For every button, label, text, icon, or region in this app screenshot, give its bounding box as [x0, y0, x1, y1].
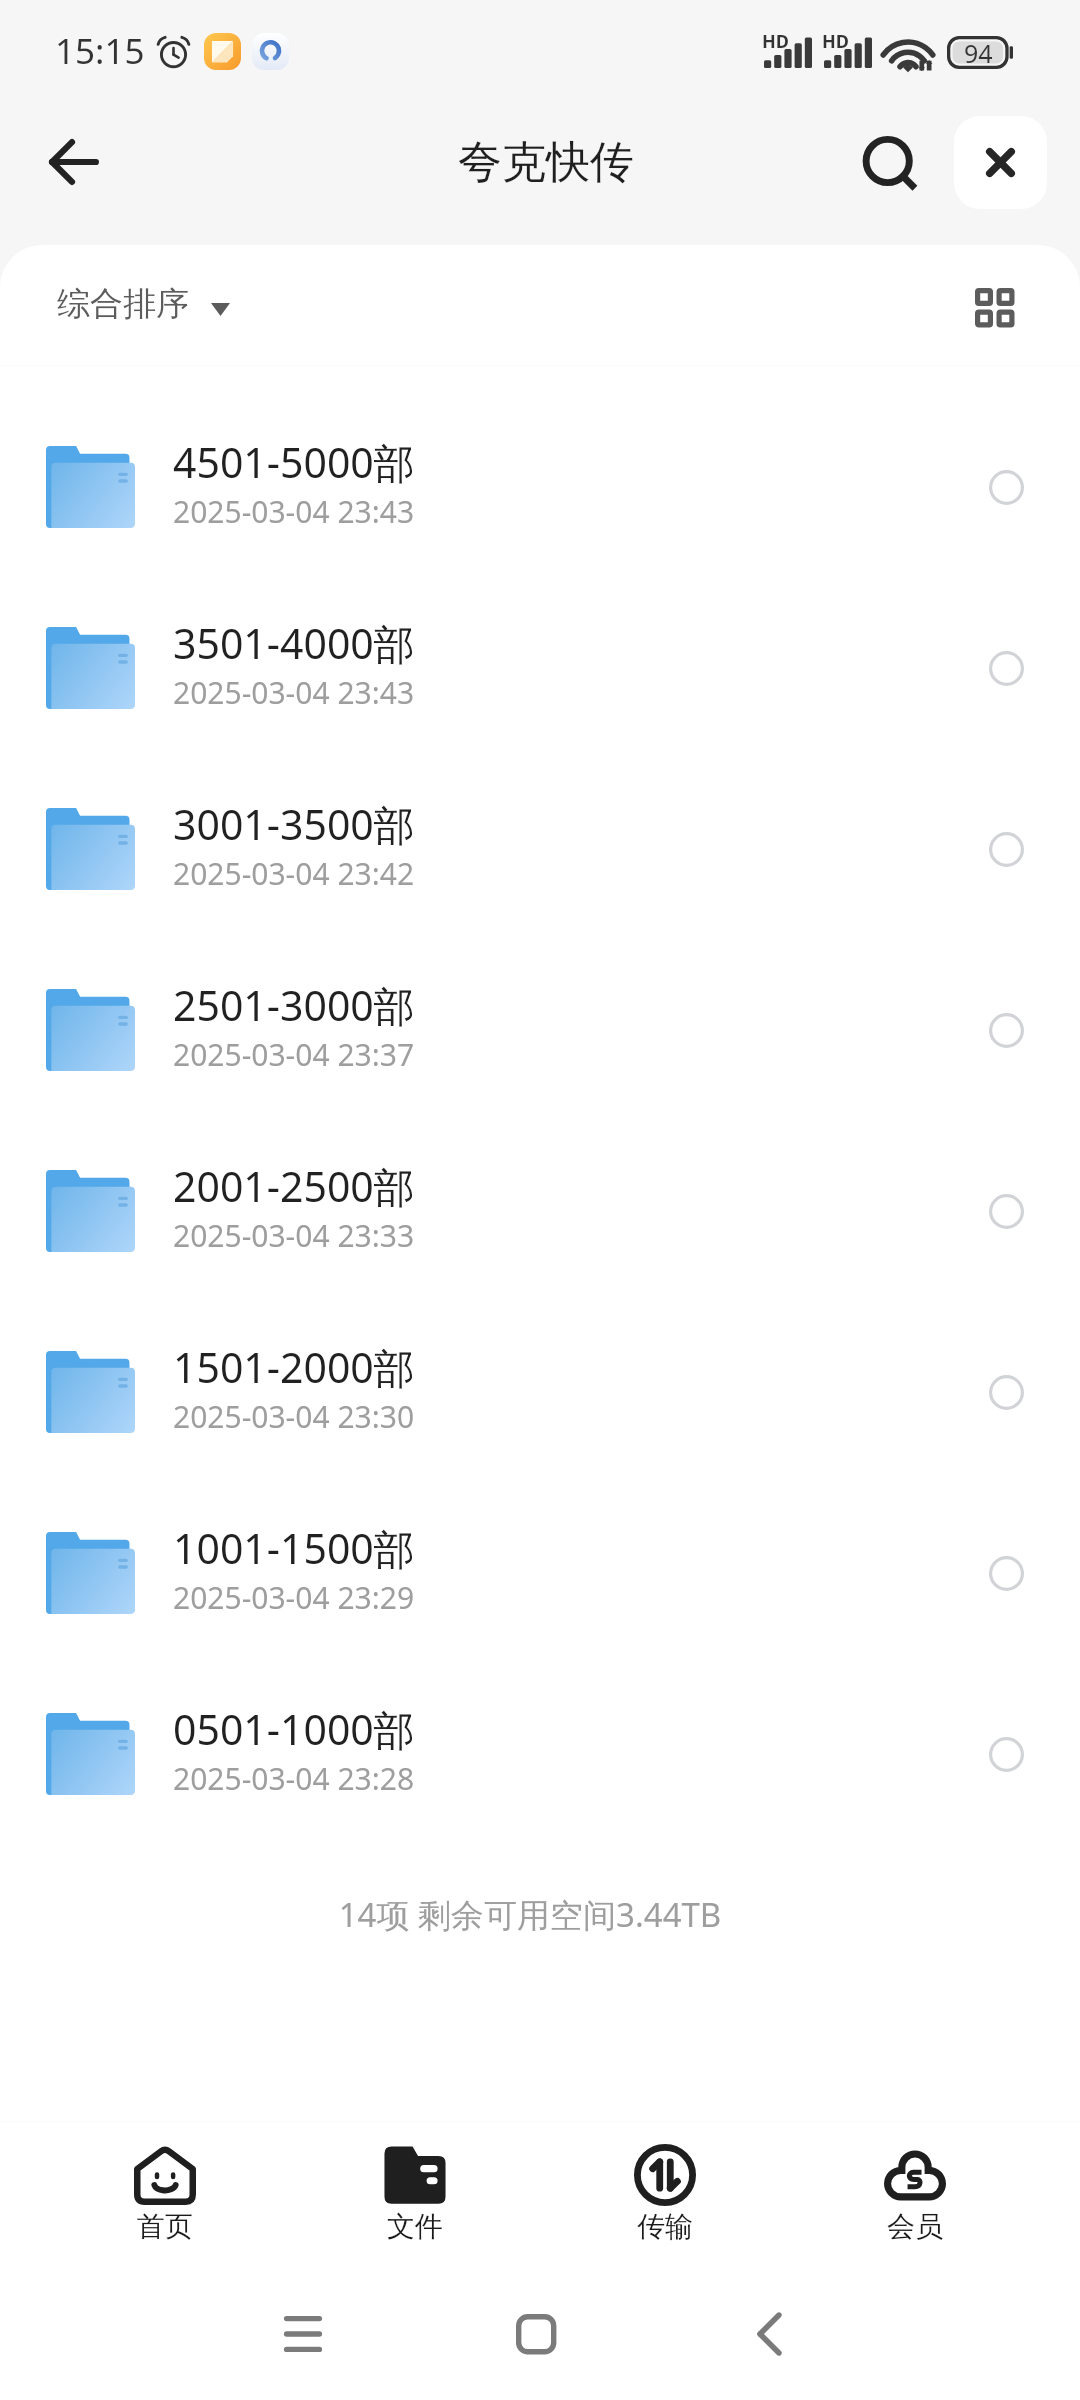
button[interactable]: 3001-3500部	[0, 758, 1080, 939]
button[interactable]: Home	[476, 2289, 596, 2379]
staticText: 首页	[137, 2209, 193, 2244]
button[interactable]: Back	[710, 2289, 830, 2379]
button[interactable]: Select	[932, 427, 1080, 547]
button[interactable]: 文件	[290, 2140, 540, 2252]
button[interactable]: Grid view	[955, 268, 1035, 348]
button[interactable]: 首页	[40, 2140, 290, 2252]
staticText: 2025-03-04 23:29	[173, 1577, 415, 1618]
button[interactable]: Select	[932, 1513, 1080, 1633]
button[interactable]: 1501-2000部	[0, 1301, 1080, 1482]
staticText: 2025-03-04 23:37	[173, 1034, 415, 1075]
staticText: 3001-3500部	[173, 796, 415, 852]
button[interactable]: Recent apps	[243, 2289, 363, 2379]
staticText: 2025-03-04 23:43	[173, 491, 415, 532]
staticText: 2025-03-04 23:28	[173, 1758, 415, 1799]
staticText: HD	[822, 29, 849, 54]
staticText: 2025-03-04 23:42	[173, 853, 415, 894]
button[interactable]: 4501-5000部	[0, 396, 1080, 577]
button[interactable]: 3501-4000部	[0, 577, 1080, 758]
button[interactable]: 2501-3000部	[0, 939, 1080, 1120]
button[interactable]: Search	[845, 119, 931, 205]
staticText: 2501-3000部	[173, 977, 415, 1033]
staticText: 文件	[387, 2209, 443, 2244]
staticText: 15:15	[55, 27, 145, 75]
staticText: 综合排序	[57, 283, 189, 325]
button[interactable]: Select	[932, 789, 1080, 909]
staticText: 4501-5000部	[173, 434, 415, 490]
button[interactable]: 2001-2500部	[0, 1120, 1080, 1301]
staticText: 会员	[887, 2209, 943, 2244]
button[interactable]: 会员	[790, 2140, 1040, 2252]
button[interactable]: Back	[31, 119, 117, 205]
staticText: HD	[762, 29, 789, 54]
button[interactable]: 传输	[540, 2140, 790, 2252]
staticText: 14项 剩余可用空间3.44TB	[0, 1892, 1070, 1937]
staticText: 夸克快传	[458, 135, 634, 190]
staticText: 3501-4000部	[173, 615, 415, 671]
staticText: 2025-03-04 23:30	[173, 1396, 415, 1437]
staticText: 1001-1500部	[173, 1520, 415, 1576]
button[interactable]: Select	[932, 1694, 1080, 1814]
staticText: 传输	[637, 2209, 693, 2244]
button[interactable]: Select	[932, 1151, 1080, 1271]
button[interactable]: Select	[932, 1332, 1080, 1452]
staticText: 2025-03-04 23:43	[173, 672, 415, 713]
button[interactable]: 0501-1000部	[0, 1663, 1080, 1844]
button[interactable]: Close	[954, 116, 1047, 209]
button[interactable]: Select	[932, 970, 1080, 1090]
button[interactable]: Select	[932, 608, 1080, 728]
staticText: 0501-1000部	[173, 1701, 415, 1757]
button[interactable]: 综合排序	[41, 269, 246, 339]
button[interactable]: 1001-1500部	[0, 1482, 1080, 1663]
staticText: 1501-2000部	[173, 1339, 415, 1395]
staticText: 2025-03-04 23:33	[173, 1215, 415, 1256]
staticText: 2001-2500部	[173, 1158, 415, 1214]
staticText: 94	[964, 36, 993, 69]
